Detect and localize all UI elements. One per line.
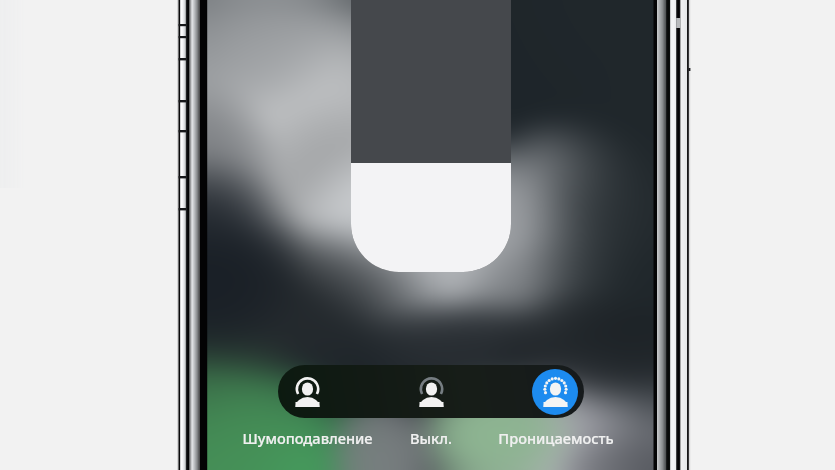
- staticText: Выкл.: [410, 428, 452, 448]
- button[interactable]: Выкл.: [361, 428, 501, 448]
- button[interactable]: Volume: [351, 0, 511, 272]
- button[interactable]: Off: [402, 365, 460, 418]
- staticText: Проницаемость: [498, 428, 614, 448]
- button[interactable]: Noise Cancellation: [278, 365, 336, 418]
- button[interactable]: Transparency: [526, 365, 584, 418]
- staticText: Шумоподавление: [242, 428, 373, 448]
- button[interactable]: Шумоподавление: [237, 428, 377, 448]
- button[interactable]: Проницаемость: [486, 428, 626, 448]
